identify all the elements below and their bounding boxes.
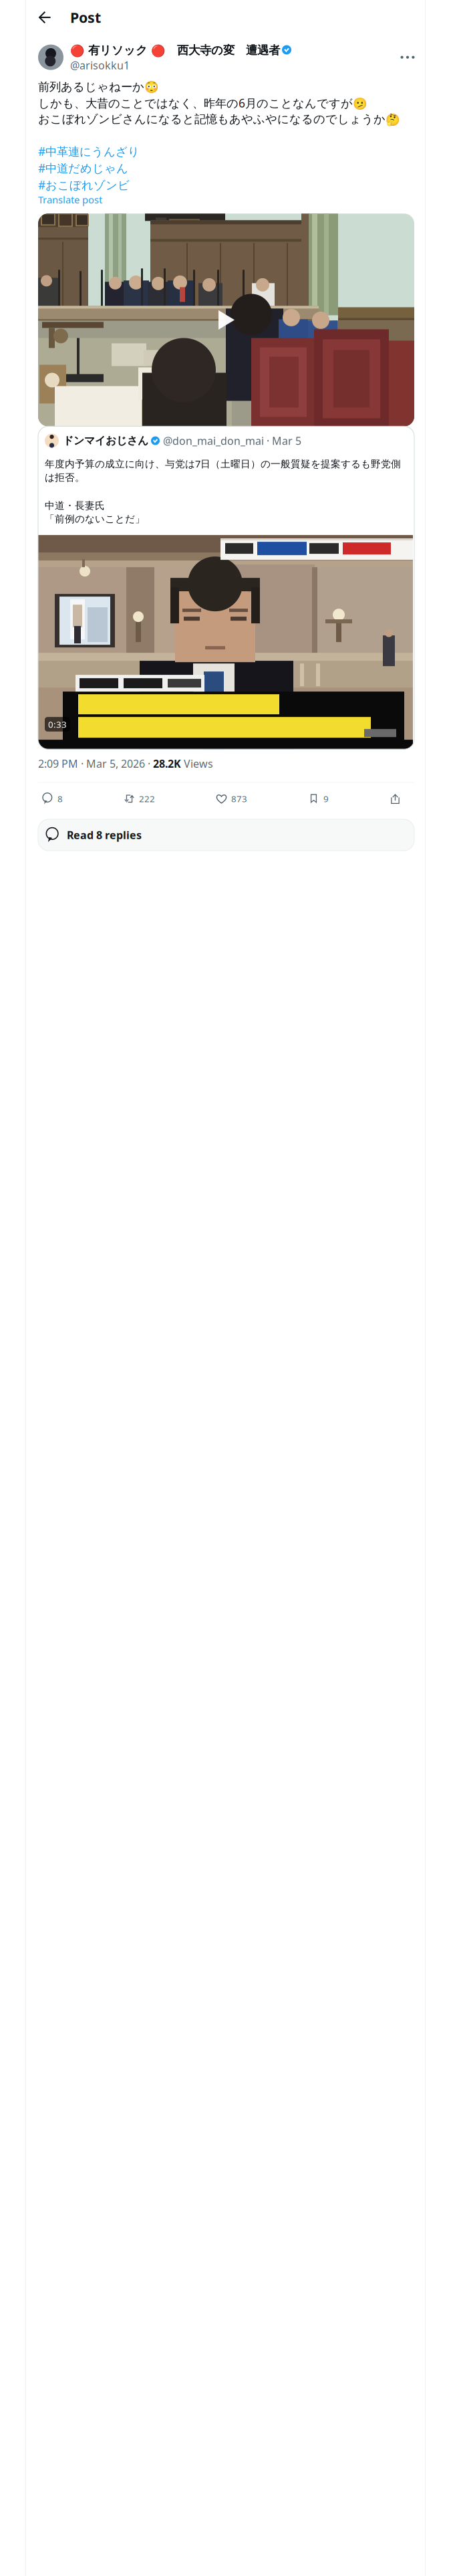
staticText: 🔴 有リソック 🔴 西大寺の変 遭遇者 <box>70 42 280 58</box>
staticText: Post <box>70 8 101 27</box>
staticText: 「前例のないことだ」 <box>45 513 145 525</box>
button[interactable]: 28.2K <box>153 756 213 771</box>
button[interactable]: 222 <box>124 793 155 805</box>
staticText: は拒否。 <box>45 472 85 484</box>
staticText: Read 8 replies <box>67 828 142 842</box>
button[interactable]: Translate post <box>38 193 102 206</box>
staticText: Translate post <box>38 193 102 206</box>
staticText: 873 <box>231 793 247 805</box>
button[interactable]: #おこぼれゾンビ <box>38 177 130 193</box>
staticText: ドンマイおじさん <box>63 434 148 447</box>
staticText: 28.2K <box>153 756 181 771</box>
staticText: 中道・長妻氏 <box>45 500 105 512</box>
staticText: Views <box>181 756 213 771</box>
staticText: @arisokku1 <box>70 58 130 72</box>
button[interactable]: #中道だめじゃん <box>38 160 128 176</box>
staticText: おこぼれゾンビさんになると記憶もあやふやになるのでしょうか🤔 <box>38 112 400 126</box>
button[interactable]: Profile photo <box>38 45 63 70</box>
button[interactable]: Share <box>390 793 401 804</box>
button[interactable]: More options <box>398 48 417 67</box>
staticText: #おこぼれゾンビ <box>38 177 130 193</box>
staticText: 8 <box>57 793 63 805</box>
button[interactable]: 9 <box>308 793 329 805</box>
button[interactable]: Back <box>33 6 56 29</box>
staticText: 年度内予算の成立に向け、与党は7日（土曜日）の一般質疑を提案するも野党側 <box>45 457 401 470</box>
staticText: 9 <box>323 793 329 805</box>
button[interactable]: ドンマイおじさん <box>38 426 414 749</box>
staticText: #中道だめじゃん <box>38 160 128 176</box>
button[interactable]: Post <box>70 8 101 27</box>
staticText: しかも、大昔のことではなく、昨年の6月のことなんですが🫤 <box>38 95 367 111</box>
button[interactable]: 873 <box>216 793 247 805</box>
staticText: 前列あるじゃねーか😳 <box>38 80 159 94</box>
button[interactable]: #中革連にうんざり <box>38 144 140 159</box>
staticText: 222 <box>139 793 155 805</box>
staticText: 0:33 <box>48 718 67 730</box>
staticText: @don_mai_don_mai · Mar 5 <box>163 434 301 448</box>
staticText: #中革連にうんざり <box>38 144 140 159</box>
button[interactable]: Play video <box>38 214 414 426</box>
staticText: 2:09 PM · Mar 5, 2026 · <box>38 756 153 771</box>
button[interactable]: 8 <box>42 793 63 805</box>
button[interactable]: Read 8 replies <box>38 819 414 851</box>
